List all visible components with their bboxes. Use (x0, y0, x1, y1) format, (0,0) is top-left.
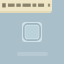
button[interactable]: Open tile (22, 22, 42, 42)
button[interactable] (0, 0, 52, 13)
